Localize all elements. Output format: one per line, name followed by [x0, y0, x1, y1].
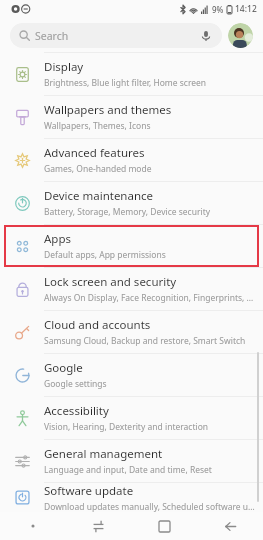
staticText: Cloud and accounts: [44, 317, 151, 333]
staticText: Search: [35, 29, 69, 43]
button[interactable]: Software update: [0, 483, 263, 512]
button[interactable]: Google: [0, 354, 263, 396]
button[interactable]: General management: [0, 440, 263, 482]
staticText: 9%: [212, 4, 224, 15]
staticText: Accessibility: [44, 403, 109, 419]
staticText: Wallpapers and themes: [44, 102, 172, 118]
button[interactable]: Lock screen and security: [0, 268, 263, 310]
staticText: Samsung Cloud, Backup and restore, Smart…: [44, 335, 246, 347]
button[interactable]: Advanced features: [0, 139, 263, 181]
staticText: Apps: [44, 231, 72, 247]
button[interactable]: Display: [0, 53, 263, 95]
staticText: Lock screen and security: [44, 274, 177, 290]
staticText: Vision, Hearing, Dexterity and interacti…: [44, 421, 209, 433]
button[interactable]: Accessibility: [0, 397, 263, 439]
staticText: General management: [44, 446, 163, 462]
staticText: Always On Display, Face Recognition, Fin…: [44, 292, 255, 304]
staticText: Language and input, Date and time, Reset: [44, 464, 212, 476]
button[interactable]: Account: [228, 23, 253, 48]
button[interactable]: Apps: [4, 225, 259, 267]
staticText: Display: [44, 59, 84, 75]
staticText: Default apps, App permissions: [44, 249, 166, 261]
staticText: Download updates manually, Scheduled sof…: [44, 501, 255, 512]
button[interactable]: Device maintenance: [0, 182, 263, 224]
staticText: Battery, Storage, Memory, Device securit…: [44, 206, 211, 218]
button[interactable]: Recent apps: [65, 512, 131, 540]
staticText: Games, One-handed mode: [44, 163, 152, 175]
staticText: 14:12: [235, 3, 257, 15]
staticText: Google settings: [44, 378, 107, 390]
button[interactable]: Cloud and accounts: [0, 311, 263, 353]
button[interactable]: Back: [197, 512, 263, 540]
staticText: Google: [44, 360, 83, 376]
staticText: Software update: [44, 483, 134, 499]
staticText: Advanced features: [44, 145, 145, 161]
button[interactable]: Keyboard toggle: [0, 512, 65, 540]
staticText: Device maintenance: [44, 188, 154, 204]
button[interactable]: Search: [10, 23, 222, 48]
staticText: Brightness, Blue light filter, Home scre…: [44, 77, 207, 89]
staticText: Wallpapers, Themes, Icons: [44, 120, 151, 132]
button[interactable]: Wallpapers and themes: [0, 96, 263, 138]
button[interactable]: Home: [131, 512, 197, 540]
button[interactable]: Voice search: [199, 29, 213, 43]
